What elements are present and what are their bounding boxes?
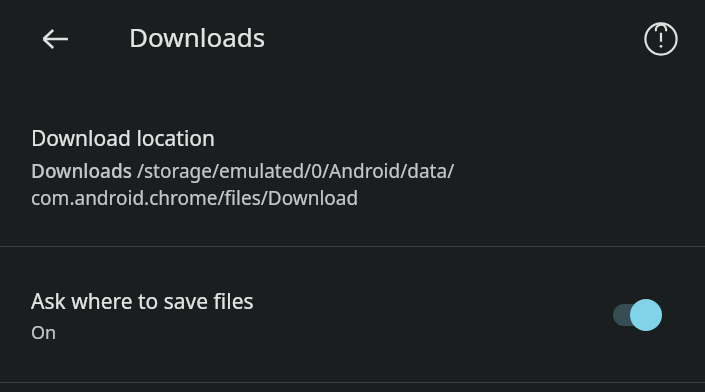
staticText: Ask where to save files — [31, 287, 254, 316]
staticText: On — [31, 320, 57, 345]
staticText: Downloads /storage/emulated/0/Android/da… — [31, 158, 591, 211]
button[interactable]: Help — [633, 11, 689, 67]
button[interactable]: Back — [27, 11, 83, 67]
staticText: Downloads — [129, 19, 266, 54]
staticText: Download location — [31, 124, 216, 153]
button[interactable]: Ask where to save files toggle — [602, 295, 678, 335]
button[interactable]: Ask where to save files — [0, 247, 705, 382]
button[interactable]: Download location — [0, 79, 705, 246]
